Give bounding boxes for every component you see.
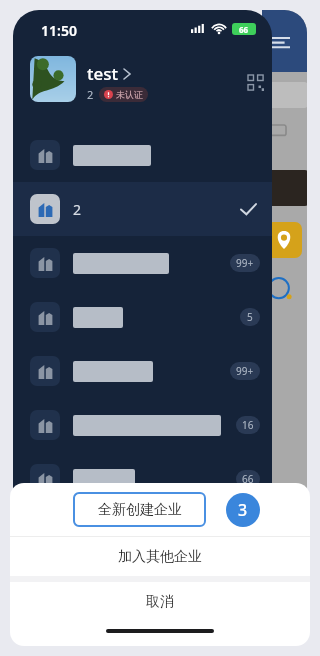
staticText: test bbox=[87, 62, 119, 85]
staticText: 加入其他企业 bbox=[118, 548, 202, 566]
button[interactable] bbox=[13, 128, 272, 182]
staticText: 99+ bbox=[236, 256, 254, 270]
staticText: 2 bbox=[87, 87, 94, 102]
staticText: 11:50 bbox=[41, 21, 77, 40]
staticText: 5 bbox=[247, 310, 253, 324]
button[interactable]: 99+ bbox=[13, 344, 272, 398]
staticText: 16 bbox=[242, 418, 254, 432]
button[interactable]: QR code bbox=[245, 72, 267, 94]
staticText: 取消 bbox=[146, 593, 174, 611]
button[interactable]: 全新创建企业 bbox=[10, 483, 310, 536]
button[interactable]: 16 bbox=[13, 398, 272, 452]
staticText: 2 bbox=[73, 200, 82, 219]
button[interactable]: 加入其他企业 bbox=[10, 537, 310, 576]
staticText: 3 bbox=[238, 499, 248, 521]
button[interactable]: 99+ bbox=[13, 236, 272, 290]
staticText: 未认证 bbox=[116, 89, 143, 100]
staticText: 66 bbox=[239, 24, 249, 35]
staticText: 全新创建企业 bbox=[98, 501, 182, 519]
button[interactable]: 2 bbox=[13, 182, 272, 236]
button[interactable]: Avatar bbox=[30, 56, 76, 102]
button[interactable]: 5 bbox=[13, 290, 272, 344]
staticText: 99+ bbox=[236, 364, 254, 378]
staticText: 66 bbox=[242, 472, 254, 486]
button[interactable]: 66 bbox=[13, 452, 272, 506]
button[interactable]: 取消 bbox=[10, 582, 310, 622]
button[interactable]: test bbox=[87, 62, 130, 85]
